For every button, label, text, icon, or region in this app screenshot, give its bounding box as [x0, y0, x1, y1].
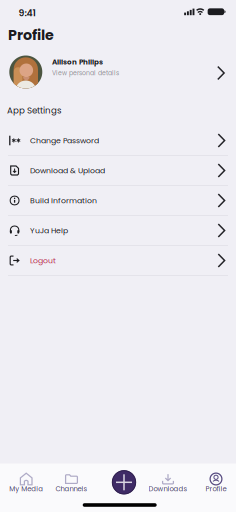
staticText: App Settings — [7, 104, 62, 116]
staticText: 9:41 — [18, 6, 35, 20]
staticText: Allison Philips — [52, 57, 103, 67]
staticText: Profile — [205, 484, 226, 494]
button[interactable]: Channels — [48, 469, 94, 496]
staticText: Build Information — [30, 195, 97, 206]
staticText: YuJa Help — [30, 225, 68, 236]
button[interactable]: Create — [112, 470, 136, 494]
button[interactable]: Profile — [193, 469, 236, 496]
staticText: Change Password — [30, 135, 99, 146]
button[interactable]: Build Information — [0, 185, 236, 215]
staticText: Channels — [55, 484, 87, 494]
button[interactable]: Download & Upload — [0, 155, 236, 185]
staticText: Profile — [8, 25, 54, 45]
staticText: Download & Upload — [30, 165, 105, 176]
staticText: Logout — [30, 255, 56, 266]
button[interactable]: Logout — [0, 245, 236, 275]
button[interactable]: Change Password — [0, 125, 236, 155]
button[interactable]: My Media — [3, 469, 49, 496]
button[interactable]: YuJa Help — [0, 215, 236, 245]
staticText: View personal details — [52, 69, 119, 77]
staticText: My Media — [9, 484, 43, 494]
button[interactable]: Allison Philips — [0, 54, 236, 90]
staticText: Downloads — [148, 484, 187, 494]
button[interactable]: Downloads — [145, 469, 191, 496]
